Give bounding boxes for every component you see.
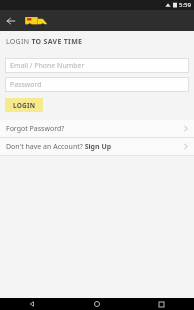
button[interactable]: Recent apps	[129, 298, 194, 310]
staticText: Forgot Password?	[6, 124, 65, 134]
button[interactable]: Home	[64, 298, 129, 310]
staticText: 5:59	[179, 1, 191, 9]
button[interactable]: Back	[0, 298, 64, 310]
staticText: Email / Phone Number	[10, 61, 85, 71]
button[interactable]: LOGIN	[5, 98, 43, 112]
button[interactable]: Don't have an Account? Sign Up	[0, 138, 194, 155]
button[interactable]: App logo	[24, 14, 48, 28]
staticText: Don't have an Account? Sign Up	[6, 142, 112, 152]
staticText: LOGIN TO SAVE TIME	[6, 37, 83, 47]
button[interactable]: Forgot Password?	[0, 120, 194, 137]
staticText: LOGIN	[13, 101, 36, 110]
button[interactable]: Password	[5, 77, 189, 92]
button[interactable]: Email / Phone Number	[5, 58, 189, 73]
button[interactable]: Back	[0, 10, 22, 31]
staticText: Password	[10, 80, 42, 90]
